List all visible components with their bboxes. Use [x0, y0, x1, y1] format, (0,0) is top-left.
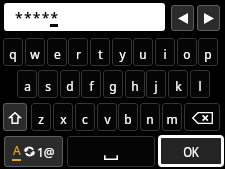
staticText: z	[38, 111, 44, 127]
staticText: f	[89, 78, 94, 94]
button[interactable]: Move cursor left	[171, 5, 194, 31]
button[interactable]: p	[198, 38, 218, 66]
button[interactable]: j	[146, 70, 166, 98]
staticText: t	[98, 46, 103, 62]
button[interactable]: i	[155, 38, 175, 66]
staticText: h	[131, 78, 139, 94]
button[interactable]: f	[81, 70, 101, 98]
button[interactable]: k	[168, 70, 188, 98]
staticText: b	[124, 111, 132, 127]
button[interactable]: x	[53, 103, 73, 131]
button[interactable]: n	[140, 103, 160, 131]
button[interactable]: o	[177, 38, 197, 66]
staticText: m	[166, 111, 178, 127]
staticText: A	[13, 142, 21, 158]
staticText: v	[104, 111, 111, 127]
button[interactable]: OK	[158, 135, 224, 167]
button[interactable]: t	[90, 38, 110, 66]
staticText: a	[24, 78, 31, 94]
staticText: *****	[15, 8, 60, 27]
staticText: w	[30, 46, 40, 62]
staticText: l	[198, 78, 202, 94]
button[interactable]: q	[3, 38, 23, 66]
staticText: g	[109, 78, 117, 94]
button[interactable]: v	[97, 103, 117, 131]
staticText: q	[9, 46, 17, 62]
button[interactable]: Shift	[3, 103, 27, 131]
button[interactable]: z	[31, 103, 51, 131]
staticText: y	[119, 46, 126, 62]
button[interactable]: w	[25, 38, 45, 66]
button[interactable]: r	[68, 38, 88, 66]
button[interactable]: g	[103, 70, 123, 98]
button[interactable]: Space	[67, 136, 155, 167]
button[interactable]: Backspace	[184, 103, 220, 131]
button[interactable]: s	[38, 70, 58, 98]
staticText: d	[66, 78, 74, 94]
staticText: x	[60, 111, 67, 127]
staticText: n	[146, 111, 154, 127]
staticText: s	[45, 78, 51, 94]
staticText: r	[76, 46, 81, 62]
staticText: p	[204, 46, 212, 62]
button[interactable]: b	[118, 103, 138, 131]
button[interactable]: Switch input mode	[4, 136, 63, 167]
button[interactable]: *****	[4, 3, 165, 31]
staticText: c	[82, 111, 88, 127]
button[interactable]: y	[112, 38, 132, 66]
staticText: u	[139, 46, 147, 62]
staticText: j	[154, 78, 158, 94]
staticText: OK	[183, 141, 199, 161]
staticText: i	[163, 46, 167, 62]
staticText: k	[175, 78, 182, 94]
button[interactable]: u	[133, 38, 153, 66]
staticText: o	[183, 46, 191, 62]
button[interactable]: h	[125, 70, 145, 98]
staticText: 1@	[37, 144, 55, 160]
staticText: e	[54, 46, 61, 62]
button[interactable]: m	[162, 103, 182, 131]
button[interactable]: c	[75, 103, 95, 131]
button[interactable]: Move cursor right	[197, 5, 220, 31]
button[interactable]: a	[17, 70, 37, 98]
button[interactable]: l	[190, 70, 210, 98]
button[interactable]: d	[60, 70, 80, 98]
button[interactable]: e	[47, 38, 67, 66]
